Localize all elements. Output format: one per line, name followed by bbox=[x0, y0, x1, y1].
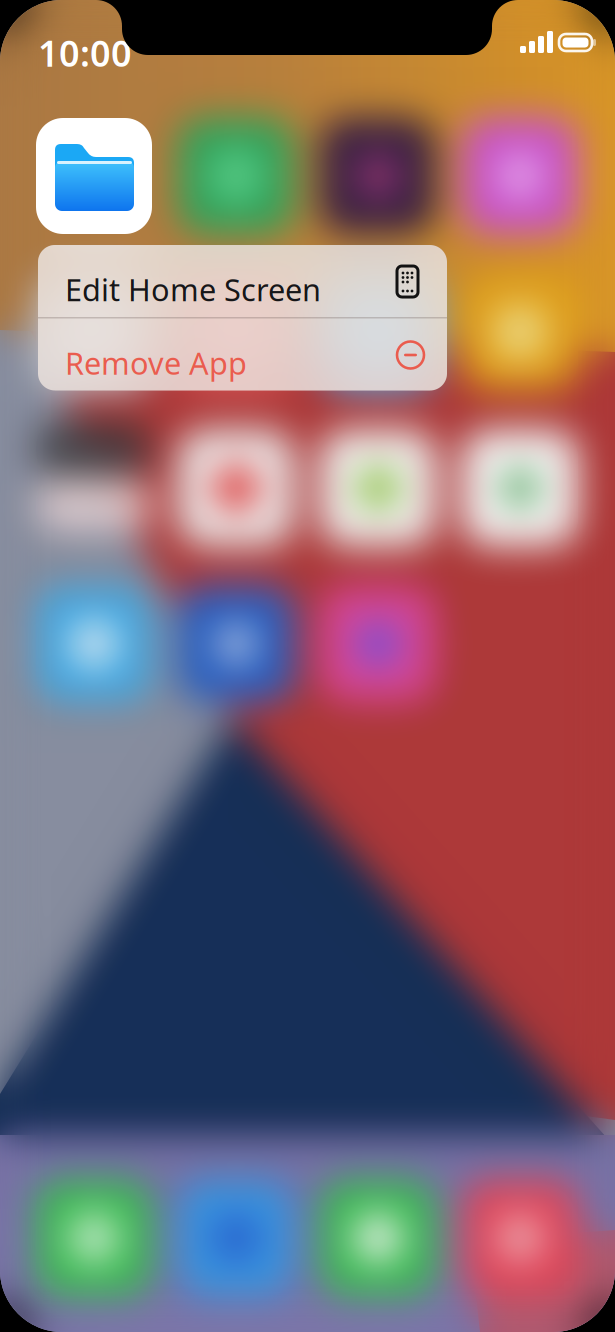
button[interactable]: Remove App bbox=[38, 318, 447, 390]
button[interactable]: Edit Home Screen bbox=[38, 245, 447, 317]
staticText: Remove App bbox=[65, 342, 247, 383]
staticText: 10:00 bbox=[38, 29, 132, 77]
staticText: Edit Home Screen bbox=[65, 269, 321, 310]
